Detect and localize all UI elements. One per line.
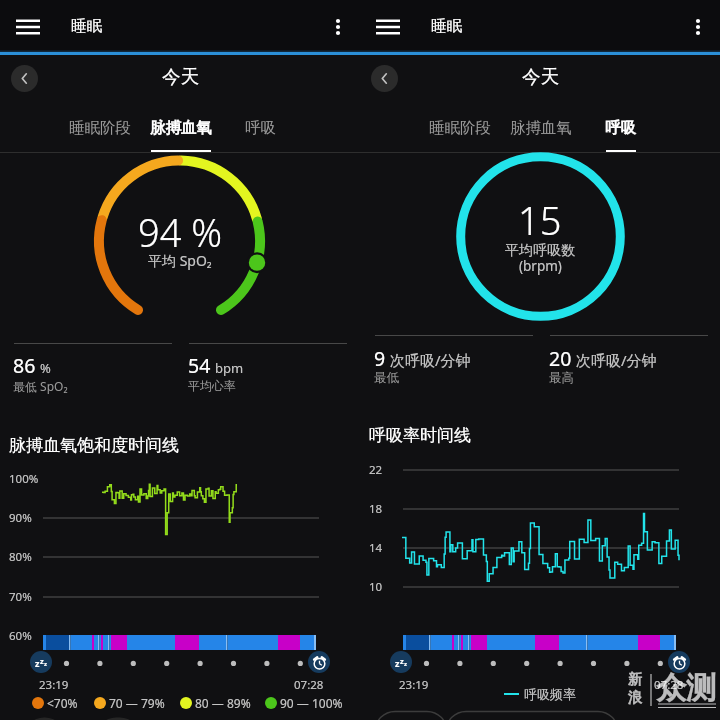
staticText: 15: [518, 194, 562, 246]
staticText: 80%: [9, 549, 32, 565]
button[interactable]: Menu: [5, 4, 51, 50]
staticText: 睡眠: [71, 16, 102, 36]
staticText: <70%: [47, 695, 78, 711]
staticText: 最低 SpO₂: [13, 378, 68, 394]
staticText: z: [40, 656, 44, 666]
staticText: 07:28: [294, 677, 324, 693]
staticText: z: [35, 657, 40, 669]
staticText: 睡眠: [431, 16, 462, 36]
button[interactable]: Back: [11, 65, 38, 92]
staticText: 脉搏血氧: [150, 118, 212, 138]
button[interactable]: 睡眠阶段: [422, 107, 498, 153]
staticText: 94 %: [138, 206, 223, 258]
staticText: 90%: [9, 510, 32, 526]
staticText: 最低: [374, 370, 399, 386]
staticText: 浪: [628, 689, 642, 707]
button[interactable]: 80 — 89%: [180, 695, 251, 711]
staticText: 23:19: [399, 677, 429, 693]
staticText: 14: [369, 540, 383, 556]
button[interactable]: Back: [371, 65, 398, 92]
staticText: 脉搏血氧: [510, 118, 572, 138]
button[interactable]: More options: [675, 4, 720, 50]
staticText: 70 — 79%: [109, 695, 165, 711]
staticText: 平均心率: [188, 378, 236, 393]
staticText: 18: [369, 501, 383, 517]
staticText: 众测: [656, 669, 716, 707]
button[interactable]: 脉搏血氧: [143, 107, 218, 153]
button[interactable]: Alarm: [668, 651, 690, 673]
staticText: 07:28: [654, 677, 684, 693]
staticText: 9: [374, 345, 386, 372]
staticText: 今天: [522, 65, 559, 88]
staticText: 呼吸频率: [524, 686, 576, 702]
staticText: 新: [628, 671, 642, 689]
staticText: 平均呼吸数: [505, 242, 575, 260]
staticText: 睡眠阶段: [69, 118, 131, 138]
staticText: 90 — 100%: [280, 695, 343, 711]
staticText: z: [395, 657, 400, 669]
staticText: 次呼吸/分钟: [576, 350, 657, 370]
staticText: 70%: [9, 589, 32, 605]
staticText: z: [400, 656, 404, 666]
button[interactable]: 90 — 100%: [265, 695, 343, 711]
staticText: z: [404, 660, 407, 668]
staticText: (brpm): [519, 257, 562, 275]
staticText: 60%: [9, 628, 32, 644]
button[interactable]: 70 — 79%: [94, 695, 165, 711]
staticText: 呼吸: [245, 118, 276, 138]
staticText: 呼吸率时间线: [369, 425, 471, 446]
staticText: 10: [369, 579, 383, 595]
button[interactable]: <70%: [32, 695, 78, 711]
staticText: 呼吸: [605, 118, 636, 138]
staticText: %: [40, 359, 51, 377]
staticText: 最高: [549, 370, 574, 386]
staticText: 80 — 89%: [195, 695, 251, 711]
staticText: 22: [369, 462, 383, 478]
button[interactable]: 呼吸: [598, 107, 643, 153]
staticText: 脉搏血氧饱和度时间线: [9, 435, 179, 456]
staticText: 平均 SpO₂: [148, 251, 212, 270]
staticText: 100%: [9, 471, 39, 487]
staticText: 今天: [162, 65, 199, 88]
button[interactable]: 睡眠阶段: [62, 107, 138, 153]
button[interactable]: More options: [315, 4, 361, 50]
button[interactable]: 呼吸: [238, 107, 283, 153]
staticText: z: [44, 660, 47, 668]
button[interactable]: Sleep start: [390, 651, 412, 673]
staticText: 86: [13, 352, 36, 379]
staticText: 23:19: [39, 677, 69, 693]
button[interactable]: Sleep start: [30, 651, 52, 673]
staticText: 睡眠阶段: [429, 118, 491, 138]
staticText: bpm: [215, 359, 244, 377]
staticText: 54: [188, 352, 211, 379]
button[interactable]: Alarm: [308, 651, 330, 673]
staticText: 次呼吸/分钟: [390, 350, 471, 370]
button[interactable]: Menu: [365, 4, 411, 50]
staticText: 20: [549, 345, 572, 372]
button[interactable]: 脉搏血氧: [503, 107, 578, 153]
